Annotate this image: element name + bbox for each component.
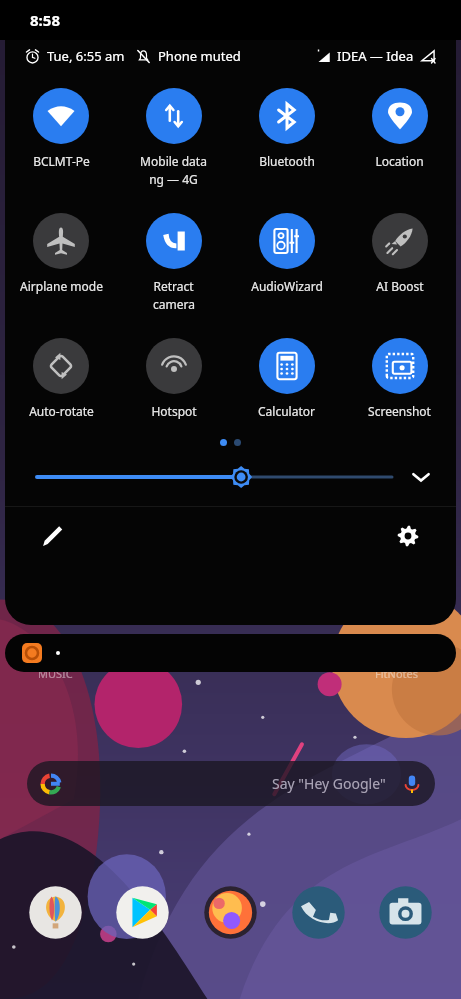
- button[interactable]: Edit tiles: [35, 518, 71, 554]
- button[interactable]: BCLMT-Pe: [5, 88, 117, 169]
- button[interactable]: [5, 634, 456, 672]
- button[interactable]: AI Boost: [343, 213, 456, 294]
- staticText: Hotspot: [151, 403, 197, 419]
- staticText: AudioWizard: [251, 278, 323, 294]
- staticText: 8:58: [30, 10, 60, 30]
- button[interactable]: Say "Hey Google": [27, 761, 435, 806]
- button[interactable]: Settings: [390, 518, 426, 554]
- button[interactable]: Firefox: [202, 884, 259, 941]
- button[interactable]: Screenshot: [343, 338, 456, 419]
- button[interactable]: AudioWizard: [230, 213, 343, 294]
- button[interactable]: Mobile data: [117, 88, 230, 187]
- staticText: Bluetooth: [259, 153, 315, 169]
- button[interactable]: Hotspot: [117, 338, 230, 419]
- staticText: Auto-rotate: [29, 403, 94, 419]
- staticText: Phone muted: [158, 47, 241, 65]
- staticText: BCLMT-Pe: [33, 153, 90, 169]
- staticText: Retract: [153, 278, 194, 294]
- staticText: Mobile data: [140, 153, 207, 169]
- button[interactable]: Auto-rotate: [5, 338, 117, 419]
- button[interactable]: Play Store: [114, 884, 171, 941]
- staticText: ng — 4G: [149, 171, 198, 187]
- staticText: FitNotes: [375, 666, 418, 681]
- button[interactable]: Expand: [404, 460, 438, 494]
- staticText: Screenshot: [368, 403, 431, 419]
- button[interactable]: Retract: [117, 213, 230, 312]
- staticText: IDEA — Idea: [337, 47, 414, 65]
- staticText: Say "Hey Google": [272, 774, 386, 793]
- staticText: Location: [375, 153, 424, 169]
- button[interactable]: Bluetooth: [230, 88, 343, 169]
- button[interactable]: Calculator: [230, 338, 343, 419]
- staticText: Airplane mode: [20, 278, 103, 294]
- button[interactable]: Phone: [290, 884, 347, 941]
- button[interactable]: Airplane mode: [5, 213, 117, 294]
- button[interactable]: Camera: [377, 884, 434, 941]
- staticText: MUSIC: [38, 666, 73, 681]
- staticText: AI Boost: [376, 278, 424, 294]
- staticText: camera: [153, 296, 195, 312]
- button[interactable]: Brightness: [37, 460, 392, 494]
- staticText: Tue, 6:55 am: [47, 47, 125, 65]
- button[interactable]: Balloon: [27, 884, 84, 941]
- staticText: Calculator: [258, 403, 315, 419]
- button[interactable]: Location: [343, 88, 456, 169]
